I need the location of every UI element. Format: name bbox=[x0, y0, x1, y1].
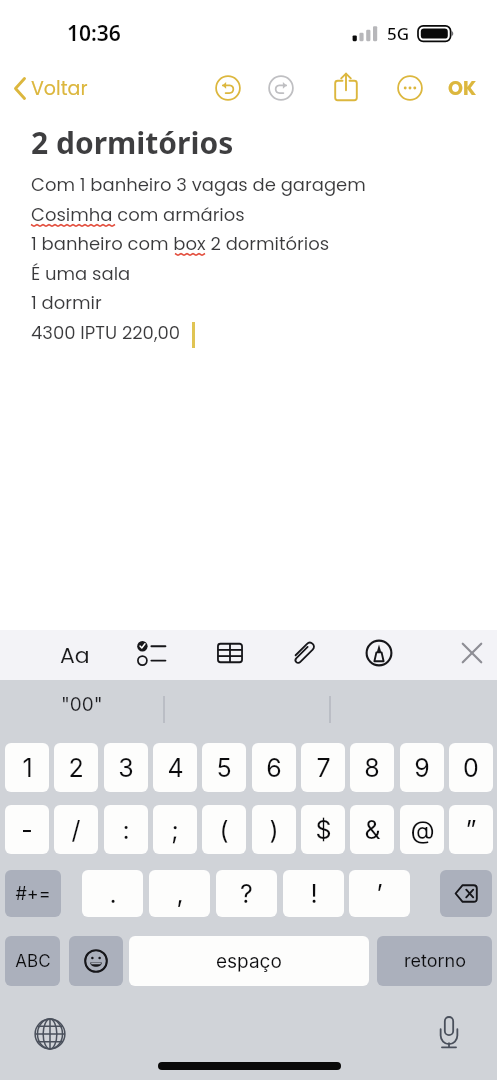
staticText: 1 dormir bbox=[31, 290, 102, 315]
staticText: 4300 IPTU 220,00 bbox=[31, 320, 181, 345]
button[interactable]: ( bbox=[202, 805, 246, 854]
staticText: ABC bbox=[15, 951, 51, 972]
staticText: Aa bbox=[60, 640, 90, 671]
button[interactable]: 0 bbox=[449, 743, 493, 792]
button[interactable]: 3 bbox=[104, 743, 148, 792]
button[interactable]: : bbox=[104, 805, 148, 854]
staticText: É uma sala bbox=[31, 261, 131, 286]
staticText: 2 dormitórios bbox=[31, 122, 234, 163]
button[interactable]: Backspace bbox=[440, 870, 492, 917]
staticText: ’ bbox=[376, 879, 383, 909]
button[interactable]: ; bbox=[153, 805, 197, 854]
button[interactable]: ABC bbox=[5, 936, 60, 986]
button[interactable]: Change keyboard bbox=[29, 1013, 71, 1055]
staticText: ( bbox=[219, 815, 229, 845]
staticText: ” bbox=[465, 815, 477, 845]
staticText: , bbox=[176, 879, 184, 909]
button[interactable]: Dictate bbox=[428, 1011, 470, 1053]
button[interactable]: ) bbox=[252, 805, 296, 854]
button[interactable]: ’ bbox=[349, 870, 410, 917]
button[interactable]: - bbox=[5, 805, 49, 854]
staticText: ! bbox=[310, 879, 318, 909]
button[interactable]: & bbox=[350, 805, 394, 854]
staticText: Cosimha com armários bbox=[31, 202, 245, 227]
staticText: 3 bbox=[118, 753, 134, 783]
staticText: . bbox=[109, 879, 117, 909]
button[interactable]: , bbox=[149, 870, 210, 917]
staticText: 9 bbox=[414, 753, 430, 783]
staticText: 10:36 bbox=[67, 19, 121, 48]
staticText: 8 bbox=[364, 753, 380, 783]
button[interactable]: retorno bbox=[377, 936, 492, 986]
button[interactable]: @ bbox=[400, 805, 444, 854]
staticText: ; bbox=[171, 815, 179, 845]
staticText: - bbox=[21, 815, 33, 845]
button[interactable]: Undo bbox=[210, 70, 246, 106]
staticText: Com 1 banheiro 3 vagas de garagem bbox=[31, 172, 366, 197]
button[interactable]: Emoji keyboard bbox=[69, 936, 123, 986]
staticText: 1 bbox=[22, 753, 33, 783]
button[interactable]: 7 bbox=[301, 743, 345, 792]
staticText: #+= bbox=[15, 883, 51, 905]
staticText: "00" bbox=[61, 693, 103, 716]
staticText: 1 banheiro com box 2 dormitórios bbox=[31, 231, 330, 256]
button[interactable]: #+= bbox=[5, 870, 61, 917]
button[interactable]: 1 bbox=[5, 743, 49, 792]
button[interactable]: ! bbox=[283, 870, 344, 917]
button[interactable]: 5 bbox=[202, 743, 246, 792]
button[interactable]: More options bbox=[392, 70, 428, 106]
button[interactable]: 2 bbox=[54, 743, 98, 792]
button[interactable]: espaço bbox=[129, 936, 369, 986]
staticText: OK bbox=[448, 75, 477, 102]
staticText: $ bbox=[315, 815, 332, 845]
button[interactable]: ? bbox=[216, 870, 277, 917]
button[interactable]: ” bbox=[449, 805, 493, 854]
staticText: 5 bbox=[216, 753, 232, 783]
staticText: ? bbox=[240, 879, 253, 909]
staticText: ) bbox=[269, 815, 279, 845]
staticText: 6 bbox=[266, 753, 282, 783]
button[interactable]: . bbox=[82, 870, 143, 917]
button[interactable]: Checklist bbox=[130, 632, 172, 674]
button[interactable]: / bbox=[54, 805, 98, 854]
staticText: 0 bbox=[463, 753, 479, 783]
staticText: retorno bbox=[404, 950, 466, 972]
staticText: 7 bbox=[316, 753, 331, 783]
button[interactable]: Close keyboard bbox=[451, 632, 493, 674]
button[interactable]: OK bbox=[440, 70, 485, 106]
button[interactable]: Aa bbox=[54, 634, 96, 676]
button[interactable]: 4 bbox=[153, 743, 197, 792]
button[interactable]: Table bbox=[209, 632, 251, 674]
button[interactable]: 8 bbox=[350, 743, 394, 792]
button[interactable]: Voltar bbox=[8, 71, 94, 105]
staticText: 4 bbox=[167, 753, 184, 783]
staticText: & bbox=[364, 815, 381, 845]
button[interactable]: Markup bbox=[358, 632, 400, 674]
staticText: @ bbox=[410, 815, 435, 845]
button[interactable]: 6 bbox=[252, 743, 296, 792]
staticText: 5G bbox=[387, 22, 410, 45]
button[interactable]: Share bbox=[328, 69, 364, 105]
staticText: Voltar bbox=[31, 75, 88, 102]
button[interactable]: 9 bbox=[400, 743, 444, 792]
button[interactable]: $ bbox=[301, 805, 345, 854]
staticText: espaço bbox=[216, 950, 282, 973]
staticText: / bbox=[71, 815, 81, 845]
staticText: 2 bbox=[68, 753, 84, 783]
button[interactable]: Redo bbox=[263, 70, 299, 106]
button[interactable]: Attach file bbox=[283, 632, 325, 674]
staticText: : bbox=[122, 815, 130, 845]
